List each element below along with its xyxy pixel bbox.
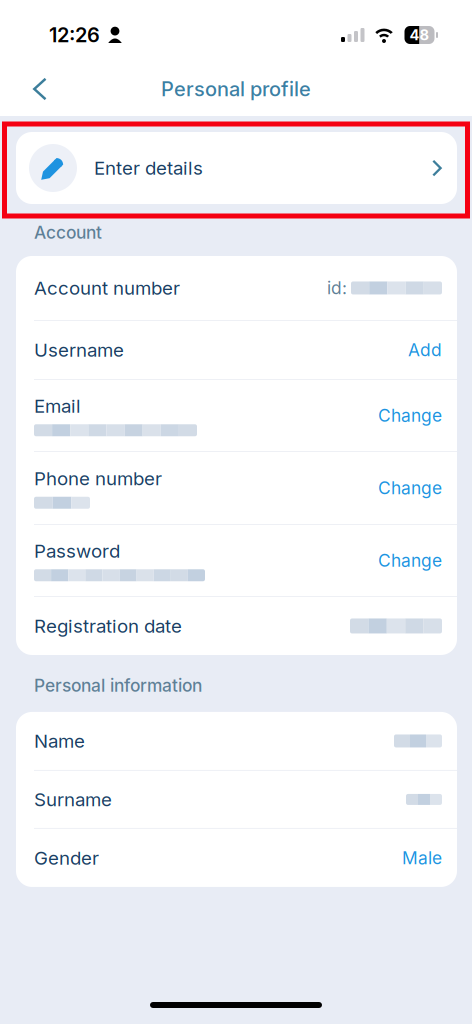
button[interactable]: Registration date: [16, 597, 457, 655]
staticText: 12:26: [49, 23, 100, 47]
staticText: Change: [378, 405, 442, 426]
staticText: Password: [34, 540, 120, 562]
staticText: Registration date: [34, 615, 182, 637]
button[interactable]: Surname: [16, 771, 457, 828]
button[interactable]: Account number: [16, 256, 457, 320]
button[interactable]: Phone number: [16, 452, 457, 524]
button[interactable]: Username: [16, 321, 457, 379]
staticText: Account: [34, 222, 102, 243]
staticText: Account number: [34, 277, 180, 299]
staticText: Add: [408, 339, 442, 360]
staticText: Name: [34, 730, 85, 752]
staticText: Surname: [34, 788, 112, 811]
staticText: Male: [402, 847, 442, 868]
button[interactable]: Name: [16, 712, 457, 770]
staticText: id:: [327, 277, 347, 298]
staticText: Email: [34, 395, 81, 417]
staticText: Phone number: [34, 467, 162, 490]
staticText: Personal profile: [161, 77, 311, 101]
staticText: Personal information: [34, 675, 202, 696]
staticText: Change: [378, 550, 442, 571]
button[interactable]: Email: [16, 380, 457, 451]
staticText: Change: [378, 477, 442, 498]
button[interactable]: Enter details: [16, 132, 457, 204]
staticText: 48: [409, 26, 429, 44]
button[interactable]: Password: [16, 525, 457, 596]
staticText: Username: [34, 339, 124, 361]
button[interactable]: Gender: [16, 829, 457, 887]
staticText: Enter details: [94, 157, 203, 179]
staticText: Gender: [34, 847, 99, 869]
button[interactable]: Back: [17, 65, 63, 112]
